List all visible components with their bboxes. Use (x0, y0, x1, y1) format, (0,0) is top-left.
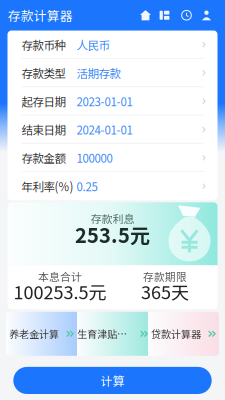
staticText: 存款计算器 (8, 6, 73, 24)
button[interactable]: 存款币种 (7, 30, 217, 59)
staticText: 贷款计算器 (151, 326, 201, 341)
button[interactable]: 生育津贴计算 (77, 312, 148, 356)
staticText: 计算 (100, 372, 124, 389)
button[interactable]: 结束日期 (7, 115, 217, 144)
staticText: 生育津贴计算 (77, 326, 133, 341)
button[interactable]: 计算 (13, 367, 212, 394)
button[interactable]: 存款金额 (7, 144, 217, 172)
button[interactable]: 起存日期 (7, 87, 217, 115)
staticText: 100253.5元 (13, 278, 106, 304)
staticText: 2023-01-01 (76, 93, 132, 109)
staticText: 365天 (141, 278, 189, 304)
staticText: 活期存款 (76, 65, 120, 81)
button[interactable]: 年利率(%) (7, 172, 217, 200)
button[interactable]: Profile (201, 10, 212, 21)
staticText: 人民币 (76, 36, 109, 53)
staticText: 养老金计算 (9, 326, 59, 341)
staticText: 存款期限 (143, 269, 187, 284)
button[interactable]: Categories (159, 10, 170, 21)
staticText: 结束日期 (21, 121, 65, 138)
staticText: 起存日期 (21, 93, 65, 109)
button[interactable]: Home (140, 10, 151, 21)
staticText: 存款金额 (21, 149, 65, 166)
button[interactable]: 存款类型 (7, 59, 217, 87)
staticText: 100000 (76, 149, 112, 166)
staticText: 253.5元 (75, 220, 150, 249)
staticText: 存款类型 (21, 65, 65, 81)
button[interactable]: History (181, 10, 192, 21)
button[interactable]: 养老金计算 (6, 312, 77, 356)
staticText: 年利率(%) (21, 178, 73, 194)
staticText: 0.25 (76, 178, 97, 194)
button[interactable]: 贷款计算器 (148, 312, 219, 356)
staticText: 2024-01-01 (76, 121, 132, 138)
staticText: 存款利息 (90, 210, 134, 226)
staticText: 本息合计 (38, 269, 82, 284)
staticText: 存款币种 (21, 36, 65, 53)
